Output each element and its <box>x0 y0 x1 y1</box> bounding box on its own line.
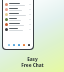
button[interactable] <box>3 27 33 32</box>
button[interactable] <box>3 22 33 27</box>
button[interactable] <box>18 44 20 46</box>
button[interactable] <box>23 44 25 46</box>
button[interactable] <box>28 44 30 46</box>
button[interactable] <box>3 12 33 17</box>
button[interactable] <box>3 2 33 7</box>
staticText: Easy <box>27 56 38 62</box>
button[interactable] <box>3 7 33 12</box>
button[interactable] <box>13 44 15 46</box>
staticText: Free Chat <box>21 62 44 68</box>
button[interactable] <box>3 17 33 22</box>
button[interactable] <box>8 44 10 46</box>
